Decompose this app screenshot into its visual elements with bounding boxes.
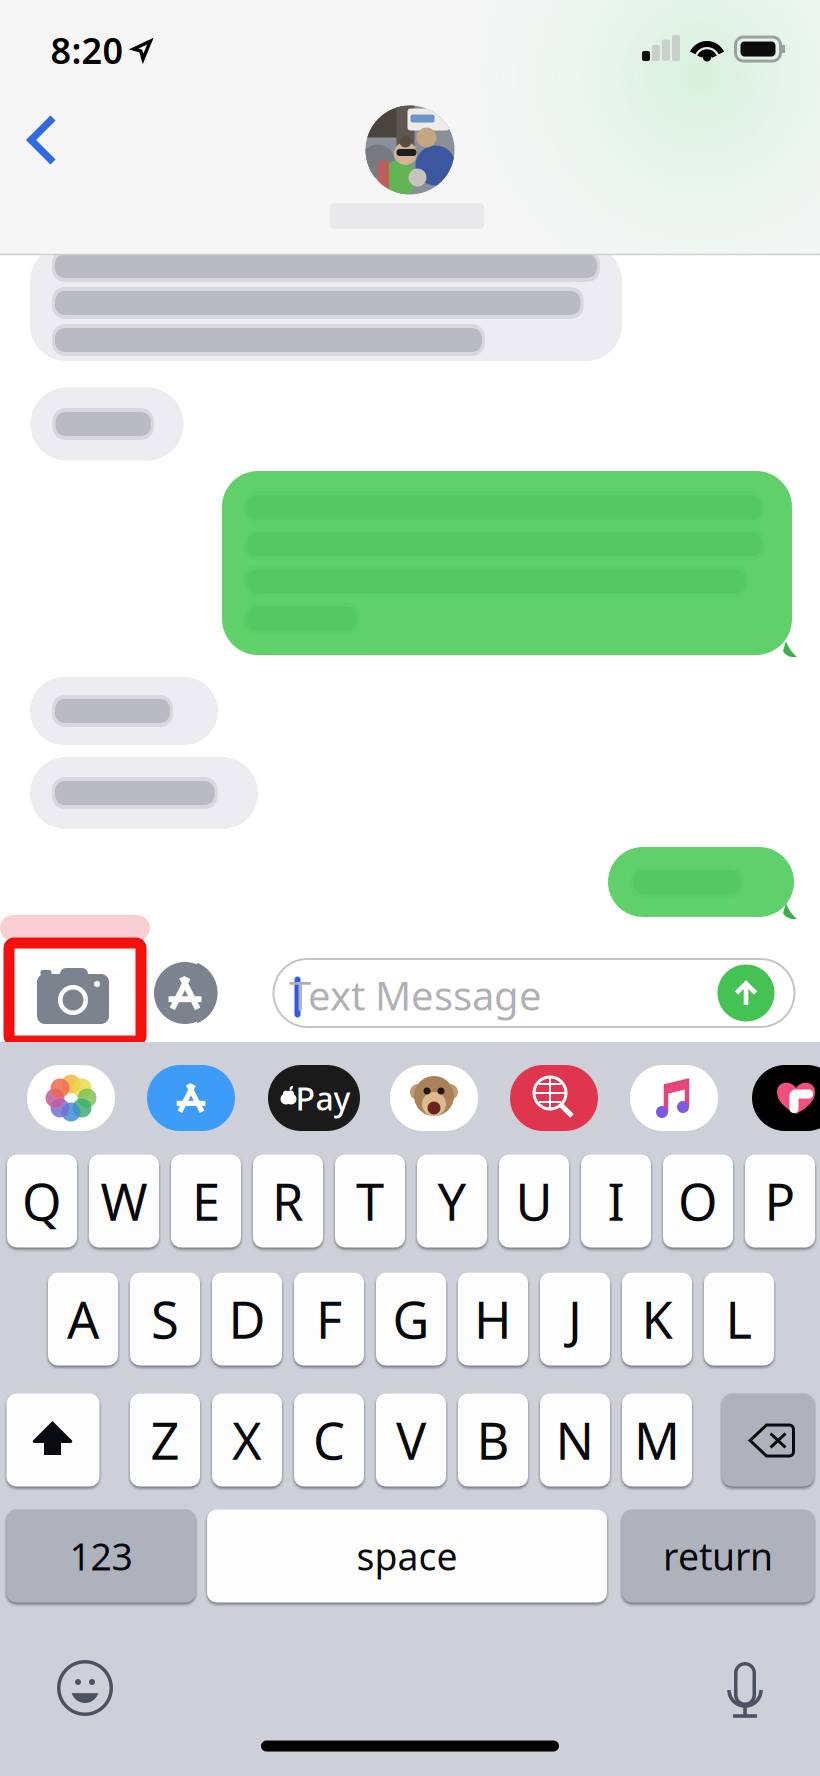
button[interactable]: M bbox=[622, 1393, 692, 1486]
staticText: Text Message bbox=[289, 968, 542, 1021]
button[interactable]: Text Message bbox=[273, 959, 794, 1027]
staticText: Z bbox=[150, 1406, 179, 1474]
staticText: M bbox=[634, 1406, 680, 1474]
staticText: A bbox=[67, 1285, 99, 1353]
staticText: Pay bbox=[295, 1077, 350, 1119]
button[interactable]: U bbox=[499, 1154, 569, 1247]
staticText: Y bbox=[437, 1167, 466, 1235]
button[interactable]: R bbox=[253, 1154, 323, 1247]
button[interactable]: J bbox=[540, 1272, 610, 1365]
button[interactable]: V bbox=[376, 1393, 446, 1486]
button[interactable]: Photos bbox=[27, 1065, 115, 1131]
button[interactable]: B bbox=[458, 1393, 528, 1486]
button[interactable]: I bbox=[581, 1154, 651, 1247]
button[interactable]: N bbox=[540, 1393, 610, 1486]
button[interactable]: Z bbox=[130, 1393, 200, 1486]
staticText: K bbox=[641, 1285, 672, 1353]
button[interactable]: C bbox=[294, 1393, 364, 1486]
staticText: B bbox=[476, 1406, 509, 1474]
staticText: F bbox=[316, 1285, 342, 1353]
staticText: R bbox=[272, 1167, 304, 1235]
staticText: space bbox=[356, 1531, 457, 1581]
button[interactable]: Delete bbox=[722, 1393, 814, 1486]
staticText: T bbox=[356, 1167, 384, 1235]
button[interactable]: Music bbox=[630, 1065, 718, 1131]
button[interactable]: 123 bbox=[6, 1509, 195, 1602]
staticText: V bbox=[396, 1406, 426, 1474]
button[interactable]: Apple Pay bbox=[268, 1065, 360, 1131]
button[interactable]: D bbox=[212, 1272, 282, 1365]
staticText: N bbox=[555, 1406, 594, 1474]
button[interactable]: E bbox=[171, 1154, 241, 1247]
button[interactable]: App Store bbox=[154, 956, 232, 1030]
button[interactable]: Memoji bbox=[390, 1065, 478, 1131]
staticText: L bbox=[725, 1285, 752, 1353]
button[interactable]: T bbox=[335, 1154, 405, 1247]
staticText: Q bbox=[22, 1167, 62, 1235]
staticText: W bbox=[100, 1167, 147, 1235]
staticText: P bbox=[764, 1167, 795, 1235]
staticText: S bbox=[151, 1285, 179, 1353]
button[interactable]: Health bbox=[752, 1065, 820, 1131]
staticText: J bbox=[568, 1285, 582, 1353]
staticText: I bbox=[607, 1167, 624, 1235]
button[interactable]: Dictation bbox=[723, 1662, 767, 1722]
staticText: H bbox=[474, 1285, 512, 1353]
button[interactable]: W bbox=[89, 1154, 159, 1247]
staticText: G bbox=[392, 1285, 429, 1353]
button[interactable]: Back bbox=[1, 98, 85, 182]
button[interactable]: Y bbox=[417, 1154, 487, 1247]
button[interactable]: Q bbox=[7, 1154, 77, 1247]
button[interactable]: H bbox=[458, 1272, 528, 1365]
button[interactable]: Emoji bbox=[57, 1660, 113, 1716]
button[interactable]: X bbox=[212, 1393, 282, 1486]
button[interactable]: P bbox=[745, 1154, 815, 1247]
button[interactable]: O bbox=[663, 1154, 733, 1247]
button[interactable]: App Store bbox=[147, 1065, 235, 1131]
button[interactable]: Send bbox=[717, 964, 774, 1021]
button[interactable]: L bbox=[704, 1272, 774, 1365]
staticText: U bbox=[515, 1167, 552, 1235]
staticText: D bbox=[228, 1285, 265, 1353]
button[interactable]: G bbox=[376, 1272, 446, 1365]
staticText: E bbox=[192, 1167, 220, 1235]
button[interactable]: F bbox=[294, 1272, 364, 1365]
button[interactable]: return bbox=[622, 1509, 814, 1602]
staticText: return bbox=[663, 1531, 773, 1581]
staticText: O bbox=[678, 1167, 718, 1235]
button[interactable]: Images bbox=[510, 1065, 598, 1131]
staticText: 123 bbox=[69, 1531, 132, 1581]
button[interactable]: S bbox=[130, 1272, 200, 1365]
staticText: 8:20 bbox=[50, 26, 123, 74]
button[interactable]: Contact bbox=[365, 105, 454, 194]
button[interactable]: Shift bbox=[6, 1393, 99, 1486]
button[interactable]: space bbox=[207, 1509, 607, 1602]
button[interactable]: A bbox=[48, 1272, 118, 1365]
staticText: X bbox=[232, 1406, 262, 1474]
button[interactable]: Camera bbox=[36, 962, 112, 1024]
staticText: C bbox=[313, 1406, 345, 1474]
button[interactable]: K bbox=[622, 1272, 692, 1365]
